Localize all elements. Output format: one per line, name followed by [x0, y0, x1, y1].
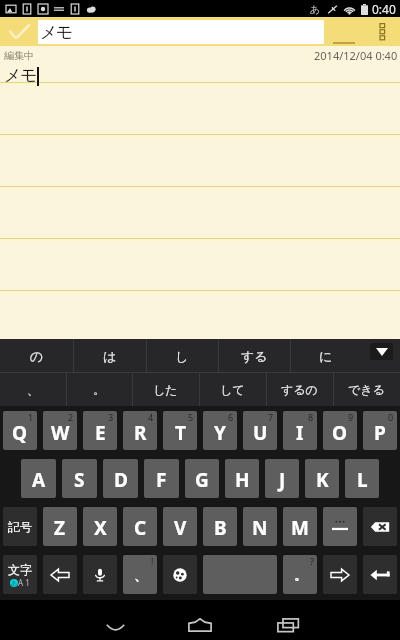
staticText: W — [51, 420, 70, 446]
staticText: T — [175, 420, 186, 446]
staticText: N — [252, 515, 268, 541]
button[interactable]: J — [265, 459, 299, 498]
staticText: した — [153, 382, 178, 397]
button[interactable]: U — [243, 411, 277, 450]
staticText: R — [134, 420, 147, 446]
staticText: V — [174, 515, 187, 541]
button[interactable]: G — [185, 459, 219, 498]
button[interactable]: P — [363, 411, 397, 450]
button[interactable]: Enter — [363, 555, 397, 594]
button[interactable]: は — [73, 339, 146, 372]
button[interactable]: T — [163, 411, 197, 450]
staticText: メモ — [40, 22, 72, 43]
button[interactable]: メモ — [38, 20, 324, 44]
staticText: に — [319, 348, 333, 364]
staticText: H — [235, 467, 250, 493]
staticText: ! — [151, 555, 154, 567]
button[interactable]: Y — [203, 411, 237, 450]
staticText: の — [30, 348, 44, 364]
button[interactable]: して — [199, 373, 266, 406]
button[interactable]: Symbols — [323, 507, 357, 546]
staticText: B — [214, 515, 227, 541]
button[interactable]: するの — [266, 373, 333, 406]
staticText: A 1 — [18, 577, 30, 588]
button[interactable]: Change language — [163, 555, 197, 594]
button[interactable]: 。 — [66, 373, 132, 406]
button[interactable]: する — [218, 339, 290, 372]
staticText: 4 — [148, 411, 154, 423]
staticText: 8 — [308, 411, 314, 423]
staticText: は — [103, 348, 117, 364]
staticText: 6 — [228, 411, 234, 423]
staticText: 編集中 — [4, 49, 34, 62]
button[interactable]: M — [283, 507, 317, 546]
button[interactable]: S — [62, 459, 97, 498]
button[interactable]: Q — [3, 411, 37, 450]
staticText: 1 — [28, 411, 34, 423]
staticText: Z — [54, 515, 66, 541]
button[interactable]: 、 — [0, 373, 66, 406]
button[interactable]: に — [290, 339, 362, 372]
button[interactable]: Recent apps — [253, 600, 323, 640]
button[interactable]: 、 — [123, 555, 157, 594]
button[interactable]: C — [123, 507, 157, 546]
staticText: E — [95, 420, 106, 446]
button[interactable]: Right arrow — [323, 555, 357, 594]
button[interactable]: X — [83, 507, 117, 546]
button[interactable]: Save note — [0, 17, 38, 46]
staticText: 7 — [268, 411, 274, 423]
button[interactable]: 文字 — [3, 555, 37, 594]
button[interactable]: の — [0, 339, 73, 372]
button[interactable]: W — [43, 411, 77, 450]
staticText: 9 — [348, 411, 354, 423]
staticText: あ — [11, 579, 18, 587]
staticText: 0:40 — [372, 1, 396, 17]
staticText: 3 — [108, 411, 114, 423]
button[interactable]: D — [103, 459, 138, 498]
staticText: L — [357, 467, 368, 493]
staticText: 文字 — [8, 562, 32, 577]
button[interactable]: O — [323, 411, 357, 450]
staticText: 2014/12/04 0:40 — [314, 48, 398, 63]
button[interactable]: H — [225, 459, 259, 498]
staticText: 2 — [68, 411, 74, 423]
button[interactable]: した — [132, 373, 199, 406]
button[interactable]: More options — [366, 17, 398, 46]
staticText: メモ — [4, 65, 37, 86]
button[interactable]: Show more suggestions — [362, 339, 400, 372]
staticText: 0 — [388, 411, 394, 423]
staticText: A — [32, 467, 46, 493]
button[interactable]: Voice input — [83, 555, 117, 594]
staticText: するの — [281, 382, 318, 397]
button[interactable]: L — [345, 459, 379, 498]
button[interactable]: R — [123, 411, 157, 450]
staticText: 記号 — [8, 519, 32, 534]
button[interactable]: F — [144, 459, 179, 498]
button[interactable]: 。 — [283, 555, 317, 594]
button[interactable]: Z — [43, 507, 77, 546]
button[interactable]: 記号 — [3, 507, 37, 546]
button[interactable]: K — [305, 459, 339, 498]
staticText: 、 — [134, 567, 147, 583]
staticText: G — [195, 467, 209, 493]
button[interactable]: N — [243, 507, 277, 546]
staticText: する — [241, 348, 268, 364]
staticText: K — [316, 467, 329, 493]
button[interactable]: し — [146, 339, 218, 372]
button[interactable]: V — [163, 507, 197, 546]
staticText: し — [175, 348, 189, 364]
button[interactable]: E — [83, 411, 117, 450]
staticText: I — [296, 420, 304, 446]
staticText: Q — [12, 420, 28, 446]
button[interactable]: A — [21, 459, 56, 498]
button[interactable]: I — [283, 411, 317, 450]
button[interactable]: B — [203, 507, 237, 546]
button[interactable]: Home — [165, 600, 235, 640]
button[interactable]: Backspace — [363, 507, 397, 546]
button[interactable]: Left arrow — [43, 555, 77, 594]
button[interactable]: できる — [333, 373, 400, 406]
staticText: 。 — [93, 382, 105, 397]
staticText: ? — [310, 555, 314, 567]
button[interactable]: Hide keyboard — [80, 600, 150, 640]
